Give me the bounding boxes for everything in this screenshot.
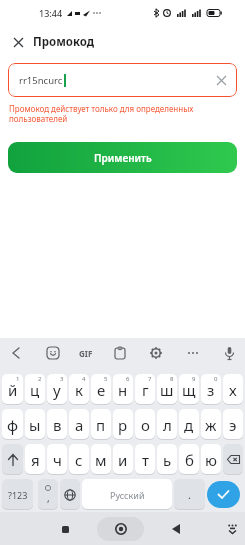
button[interactable]: у — [47, 374, 67, 405]
staticText: м — [95, 450, 107, 470]
staticText: х — [229, 380, 237, 400]
staticText: 0 — [214, 375, 218, 383]
button[interactable] — [60, 479, 80, 510]
button[interactable] — [110, 343, 130, 363]
staticText: в — [53, 415, 62, 435]
staticText: ш — [160, 380, 174, 400]
button[interactable]: . — [174, 479, 205, 510]
staticText: 6 — [126, 375, 130, 383]
staticText: Промокод — [33, 34, 95, 50]
button[interactable]: п — [91, 409, 111, 440]
staticText: ф — [7, 415, 19, 435]
staticText: Применить — [94, 151, 152, 165]
button[interactable]: с — [69, 444, 89, 475]
staticText: щ — [182, 380, 196, 400]
button[interactable]: ь — [157, 444, 177, 475]
staticText: п — [96, 415, 106, 435]
staticText: а — [75, 415, 84, 435]
button[interactable] — [2, 444, 23, 475]
button[interactable]: GIF — [79, 343, 93, 363]
button[interactable]: л — [157, 409, 177, 440]
button[interactable]: х — [223, 374, 243, 405]
staticText: ж — [205, 415, 217, 435]
staticText: у — [53, 380, 61, 400]
button[interactable]: р — [113, 409, 133, 440]
staticText: . — [188, 487, 191, 502]
button[interactable]: м — [91, 444, 111, 475]
button[interactable]: щ — [179, 374, 199, 405]
button[interactable] — [164, 517, 188, 541]
staticText: л — [163, 415, 172, 435]
button[interactable]: н — [113, 374, 133, 405]
button[interactable]: о — [135, 409, 155, 440]
staticText: ч — [53, 450, 62, 470]
staticText: о — [141, 415, 150, 435]
button[interactable]: и — [113, 444, 133, 475]
button[interactable]: э — [223, 409, 243, 440]
button[interactable]: ш — [157, 374, 177, 405]
button[interactable] — [10, 34, 26, 50]
button[interactable] — [207, 481, 240, 508]
button[interactable]: з — [201, 374, 221, 405]
button[interactable]: ц — [25, 374, 45, 405]
button[interactable]: а — [69, 409, 89, 440]
button[interactable]: ч — [47, 444, 67, 475]
staticText: Промокод действует только для определенн… — [9, 103, 194, 125]
staticText: , — [47, 491, 50, 505]
button[interactable] — [53, 517, 77, 541]
button[interactable]: ?123 — [2, 479, 33, 510]
staticText: 5 — [104, 375, 108, 383]
staticText: rr15ncurc — [19, 74, 63, 87]
button[interactable]: т — [135, 444, 155, 475]
staticText: 2 — [38, 375, 42, 383]
button[interactable]: г — [135, 374, 155, 405]
staticText: н — [118, 380, 128, 400]
staticText: 1 — [16, 375, 20, 383]
staticText: к — [75, 380, 83, 400]
staticText: р — [118, 415, 128, 435]
staticText: 7 — [148, 375, 152, 383]
button[interactable]: в — [47, 409, 67, 440]
button[interactable]: я — [25, 444, 45, 475]
staticText: 13:44 — [39, 7, 63, 19]
button[interactable]: , — [38, 479, 58, 510]
button[interactable]: ю — [201, 444, 221, 475]
button[interactable]: rr15ncurc — [8, 63, 237, 97]
button[interactable] — [146, 343, 166, 363]
button[interactable] — [183, 343, 203, 363]
staticText: 8 — [170, 375, 174, 383]
staticText: е — [97, 380, 106, 400]
staticText: й — [8, 380, 18, 400]
staticText: б — [185, 450, 194, 470]
staticText: 3 — [60, 375, 64, 383]
staticText: ?123 — [8, 489, 28, 501]
button[interactable]: ф — [2, 409, 23, 440]
button[interactable]: Русский — [82, 479, 172, 510]
button[interactable]: Применить — [8, 142, 237, 173]
staticText: 9 — [192, 375, 196, 383]
button[interactable]: д — [179, 409, 199, 440]
staticText: д — [184, 415, 194, 435]
button[interactable] — [221, 518, 243, 540]
staticText: ь — [163, 450, 172, 470]
staticText: ю — [205, 450, 217, 470]
button[interactable]: ж — [201, 409, 221, 440]
staticText: г — [142, 380, 149, 400]
staticText: я — [31, 450, 40, 470]
button[interactable]: е — [91, 374, 111, 405]
staticText: ы — [29, 415, 41, 435]
button[interactable] — [223, 444, 243, 475]
button[interactable]: й — [2, 374, 23, 405]
staticText: GIF — [79, 348, 93, 359]
staticText: 4 — [82, 375, 86, 383]
button[interactable] — [97, 517, 144, 541]
button[interactable] — [6, 343, 26, 363]
button[interactable]: ы — [25, 409, 45, 440]
button[interactable]: б — [179, 444, 199, 475]
button[interactable]: к — [69, 374, 89, 405]
staticText: Русский — [110, 489, 145, 501]
button[interactable] — [219, 343, 239, 363]
staticText: з — [207, 380, 215, 400]
button[interactable] — [43, 343, 63, 363]
staticText: э — [229, 415, 237, 435]
